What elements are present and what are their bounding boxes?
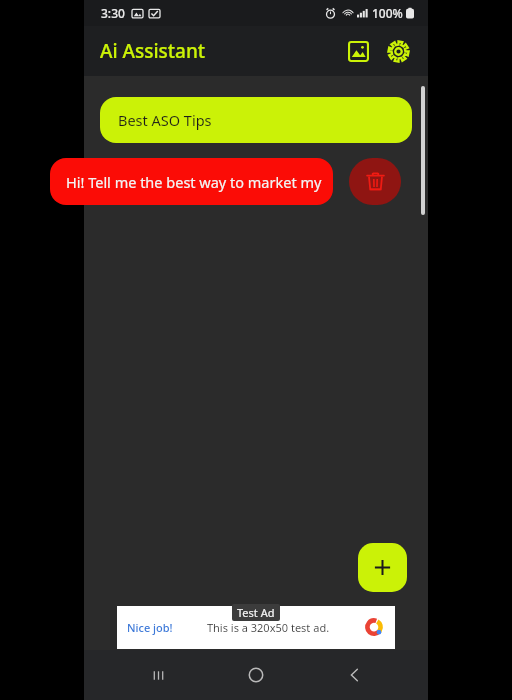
button[interactable]: Gallery (338, 31, 378, 71)
staticText: Hi! Tell me the best way to market my ap… (66, 172, 333, 192)
staticText: Best ASO Tips (118, 110, 212, 130)
staticText: 100% (372, 5, 403, 21)
staticText: Ai Assistant (100, 38, 206, 64)
button[interactable]: Back (330, 651, 378, 699)
button[interactable]: Best ASO Tips (100, 97, 412, 143)
button[interactable]: Home (232, 651, 280, 699)
staticText: 3:30 (101, 5, 125, 21)
button[interactable]: Nice job! (117, 606, 395, 649)
button[interactable]: Add (358, 543, 407, 592)
staticText: Nice job! (127, 620, 173, 635)
button[interactable]: Settings (378, 31, 418, 71)
button[interactable]: Recent apps (134, 651, 182, 699)
button[interactable]: Hi! Tell me the best way to market my ap… (50, 158, 333, 205)
button[interactable]: Delete (349, 158, 401, 205)
staticText: This is a 320x50 test ad. (173, 620, 363, 635)
staticText: Test Ad (237, 605, 275, 620)
